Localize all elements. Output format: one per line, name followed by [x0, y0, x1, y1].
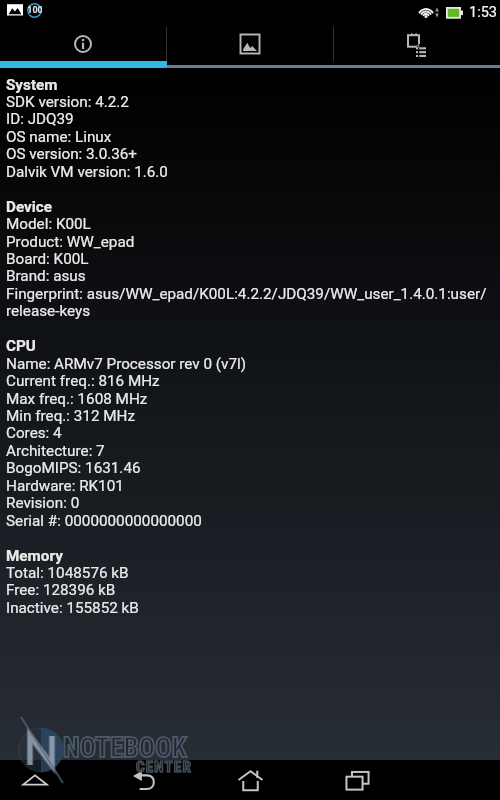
staticText: CENTER [136, 758, 192, 776]
button[interactable]: Images [167, 24, 333, 63]
staticText: Min freq.: 312 MHz [6, 407, 136, 425]
staticText: Serial #: 0000000000000000 [6, 512, 202, 530]
staticText: Architecture: 7 [6, 442, 105, 460]
staticText: ID: JDQ39 [6, 110, 74, 128]
button[interactable]: Show navigation [16, 760, 54, 800]
button[interactable]: Notes [334, 24, 500, 63]
staticText: Dalvik VM version: 1.6.0 [6, 163, 168, 181]
staticText: NOTEBOOK [63, 732, 187, 764]
staticText: Memory [6, 547, 63, 565]
button[interactable]: Info [0, 24, 166, 63]
staticText: Hardware: RK101 [6, 477, 124, 495]
staticText: Brand: asus [6, 267, 86, 285]
staticText: BogoMIPS: 1631.46 [6, 459, 141, 477]
button[interactable]: Back [114, 760, 174, 800]
staticText: Free: 128396 kB [6, 581, 116, 599]
staticText: Revision: 0 [6, 494, 80, 512]
staticText: 100 [27, 5, 42, 16]
staticText: Product: WW_epad [6, 233, 135, 251]
staticText: SDK version: 4.2.2 [6, 93, 129, 111]
button[interactable]: Recent apps [327, 760, 387, 800]
staticText: Model: K00L [6, 215, 91, 233]
staticText: OS name: Linux [6, 128, 112, 146]
staticText: Name: ARMv7 Processor rev 0 (v7l) [6, 355, 247, 373]
staticText: CENTER [136, 758, 192, 776]
staticText: NOTEBOOK [63, 732, 187, 764]
staticText: Fingerprint: asus/WW_epad/K00L:4.2.2/JDQ… [6, 285, 487, 303]
staticText: Inactive: 155852 kB [6, 599, 139, 617]
staticText: Board: K00L [6, 250, 89, 268]
button[interactable]: Home [220, 760, 280, 800]
staticText: release-keys [6, 302, 91, 320]
staticText: Cores: 4 [6, 424, 62, 442]
staticText: CPU [6, 337, 36, 355]
staticText: System [6, 76, 58, 94]
staticText: Current freq.: 816 MHz [6, 372, 160, 390]
staticText: Device [6, 198, 53, 216]
staticText: OS version: 3.0.36+ [6, 145, 138, 163]
staticText: 1:53 [469, 4, 497, 21]
staticText: Max freq.: 1608 MHz [6, 390, 148, 408]
staticText: Total: 1048576 kB [6, 564, 129, 582]
